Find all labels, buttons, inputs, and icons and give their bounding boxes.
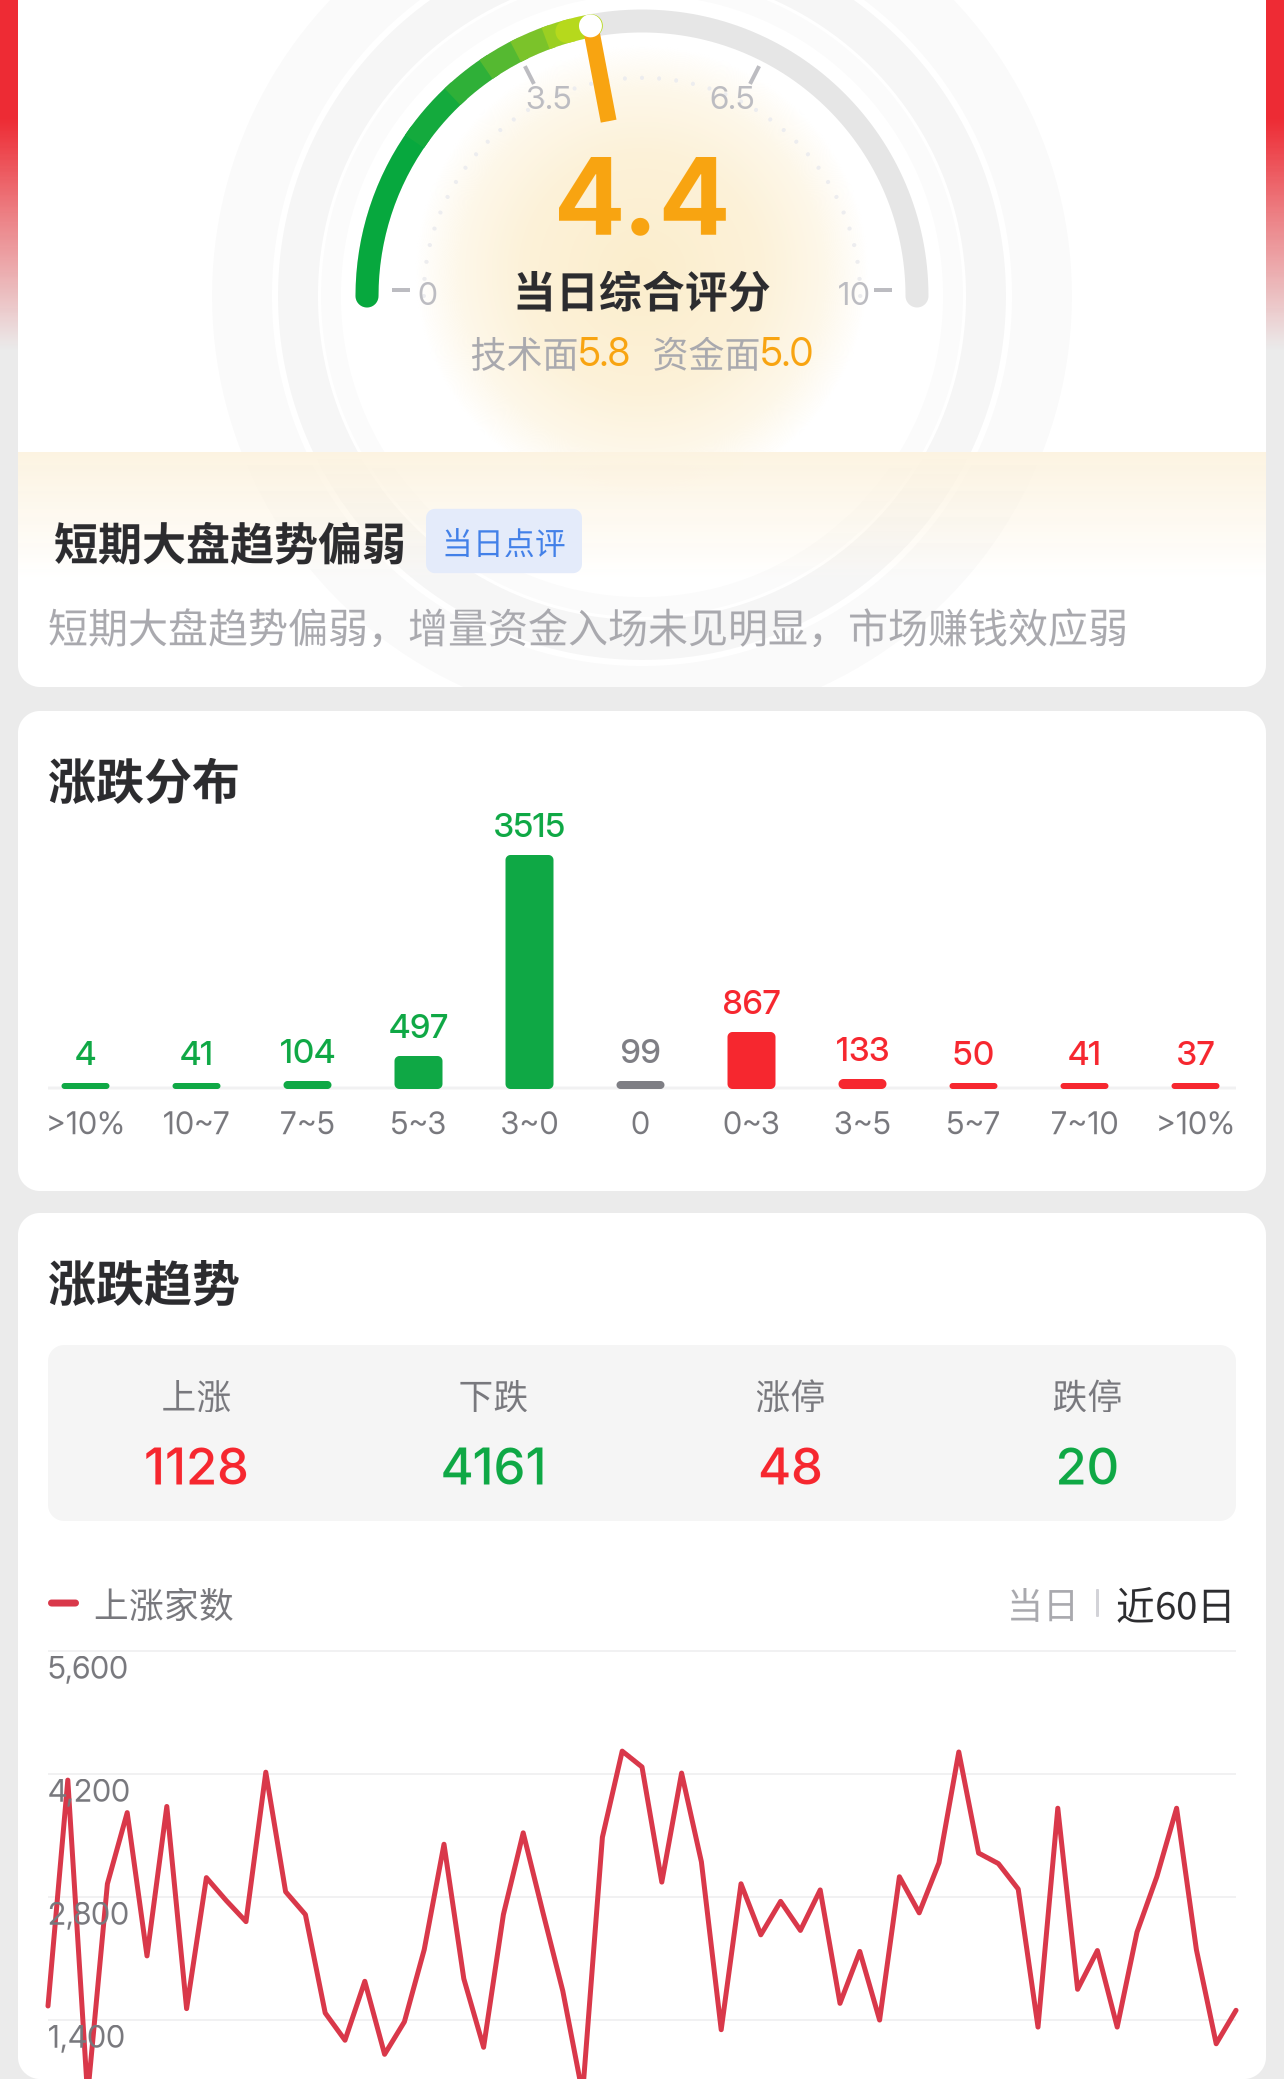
staticText: 5~3: [390, 1104, 446, 1141]
staticText: 下跌: [458, 1369, 528, 1419]
staticText: 867: [722, 982, 780, 1022]
staticText: 3.5: [526, 78, 572, 117]
staticText: 50: [953, 1033, 994, 1073]
staticText: 5~7: [946, 1104, 1000, 1141]
staticText: 7~5: [280, 1104, 335, 1141]
staticText: >10%: [46, 1104, 125, 1141]
staticText: 497: [389, 1006, 448, 1046]
staticText: 0: [631, 1104, 650, 1141]
staticText: 0~3: [723, 1104, 780, 1141]
staticText: 5.8: [578, 329, 630, 375]
staticText: 涨跌趋势: [48, 1245, 240, 1314]
staticText: 4: [75, 1033, 96, 1073]
staticText: 10: [838, 274, 870, 313]
staticText: 上涨: [161, 1369, 231, 1419]
staticText: 4.4: [553, 131, 730, 261]
staticText: 20: [1055, 1435, 1119, 1497]
staticText: 2,800: [48, 1895, 129, 1932]
staticText: 4,200: [48, 1772, 130, 1809]
staticText: 短期大盘趋势偏弱，增量资金入场未见明显，市场赚钱效应弱: [48, 596, 1128, 654]
staticText: 当日点评: [442, 519, 566, 563]
staticText: 技术面: [470, 326, 578, 378]
staticText: 5.0: [760, 329, 813, 375]
staticText: 41: [1068, 1033, 1101, 1073]
staticText: 6.5: [710, 78, 755, 117]
staticText: 资金面: [652, 326, 760, 378]
staticText: 涨跌分布: [48, 743, 240, 812]
staticText: 短期大盘趋势偏弱: [54, 509, 406, 573]
staticText: 7~10: [1050, 1104, 1118, 1141]
button[interactable]: 当日: [1007, 1577, 1079, 1629]
button[interactable]: 3.5: [18, 0, 1266, 687]
staticText: 3515: [493, 805, 565, 845]
staticText: 近60日: [1116, 1575, 1236, 1631]
staticText: 1,400: [48, 2018, 125, 2055]
staticText: 4161: [440, 1435, 546, 1497]
staticText: 99: [620, 1031, 660, 1071]
staticText: 3~0: [500, 1104, 558, 1141]
staticText: 跌停: [1052, 1369, 1122, 1419]
staticText: 当日: [1007, 1577, 1079, 1629]
staticText: 133: [836, 1029, 889, 1069]
staticText: 1128: [144, 1435, 249, 1497]
staticText: 10~7: [163, 1104, 230, 1141]
staticText: 37: [1176, 1033, 1214, 1073]
staticText: 上涨家数: [94, 1578, 234, 1628]
staticText: 3~5: [834, 1104, 891, 1141]
staticText: >10%: [1156, 1104, 1235, 1141]
button[interactable]: 近60日: [1116, 1575, 1236, 1631]
staticText: 48: [758, 1435, 823, 1497]
staticText: 5,600: [48, 1649, 128, 1686]
staticText: 涨停: [755, 1369, 825, 1419]
staticText: 0: [418, 274, 438, 313]
staticText: 当日综合评分: [513, 258, 771, 320]
staticText: 104: [280, 1031, 335, 1071]
staticText: 41: [180, 1033, 213, 1073]
